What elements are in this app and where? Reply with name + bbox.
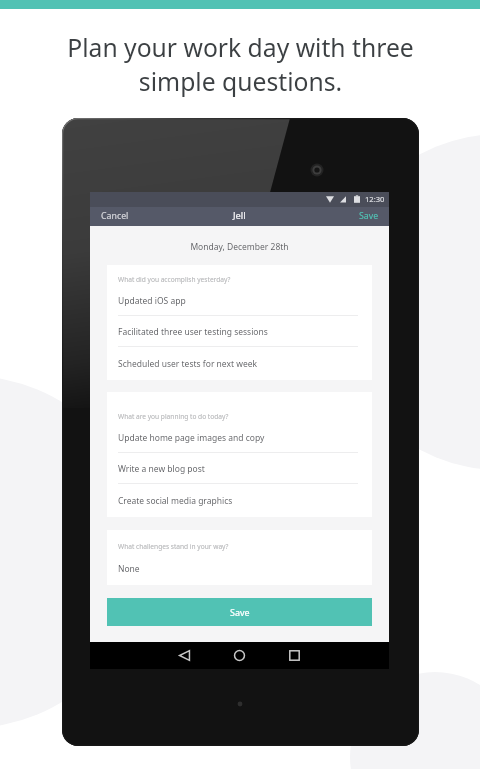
staticText: Save [230,606,250,618]
staticText: Facilitated three user testing sessions [118,326,268,338]
staticText: Monday, December 28th [90,241,389,253]
button[interactable]: Save [107,598,372,626]
staticText: Create social media graphics [118,495,233,507]
button[interactable]: Create social media graphics [107,484,372,517]
staticText: What did you accomplish yesterday? [118,275,231,284]
staticText: Jell [233,209,246,222]
button[interactable]: Updated iOS app [107,285,372,316]
button[interactable]: Write a new blog post [107,453,372,484]
staticText: Updated iOS app [118,295,186,307]
staticText: Save [359,210,379,222]
button[interactable]: Scheduled user tests for next week [107,347,372,380]
button[interactable]: Update home page images and copy [107,422,372,453]
staticText: None [118,563,140,575]
staticText: Write a new blog post [118,463,205,475]
staticText: Scheduled user tests for next week [118,358,258,370]
staticText: 12:30 [365,194,385,204]
staticText: Plan your work day with three simple que… [67,31,414,99]
staticText: What are you planning to do today? [118,412,229,421]
button[interactable]: Recents [267,642,322,669]
staticText: Cancel [101,210,129,222]
button[interactable]: Back [157,642,212,669]
button[interactable]: Home [212,642,267,669]
button[interactable]: Save [351,207,389,226]
staticText: What challenges stand in your way? [118,542,229,551]
button[interactable]: None [107,552,372,585]
button[interactable]: Cancel [90,207,137,226]
button[interactable]: Facilitated three user testing sessions [107,316,372,347]
staticText: Update home page images and copy [118,432,265,444]
